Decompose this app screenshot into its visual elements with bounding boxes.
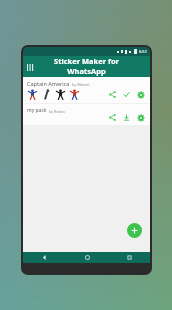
button[interactable]: Back bbox=[23, 252, 66, 263]
staticText: Sticker Maker for WhatsApp bbox=[37, 56, 136, 76]
button[interactable]: Pack settings bbox=[136, 90, 145, 99]
staticText: by Redon bbox=[49, 109, 65, 114]
button[interactable]: Create new sticker pack bbox=[127, 223, 142, 238]
staticText: by Marvel bbox=[72, 82, 90, 87]
button[interactable]: Open navigation drawer bbox=[23, 60, 37, 74]
button[interactable]: Share pack bbox=[108, 113, 117, 122]
button[interactable]: my pack bbox=[23, 104, 150, 125]
button[interactable]: Recent apps bbox=[108, 252, 150, 263]
button[interactable]: Captain America bbox=[23, 77, 150, 103]
button[interactable]: Add pack to WhatsApp bbox=[122, 113, 131, 122]
staticText: Captain America bbox=[27, 80, 70, 87]
button[interactable]: Pack added bbox=[122, 90, 131, 99]
button[interactable]: Pack settings bbox=[136, 113, 145, 122]
staticText: 6:51 bbox=[139, 49, 147, 54]
button[interactable]: Share pack bbox=[108, 90, 117, 99]
staticText: my pack bbox=[27, 107, 47, 114]
button[interactable]: Home bbox=[66, 252, 108, 263]
